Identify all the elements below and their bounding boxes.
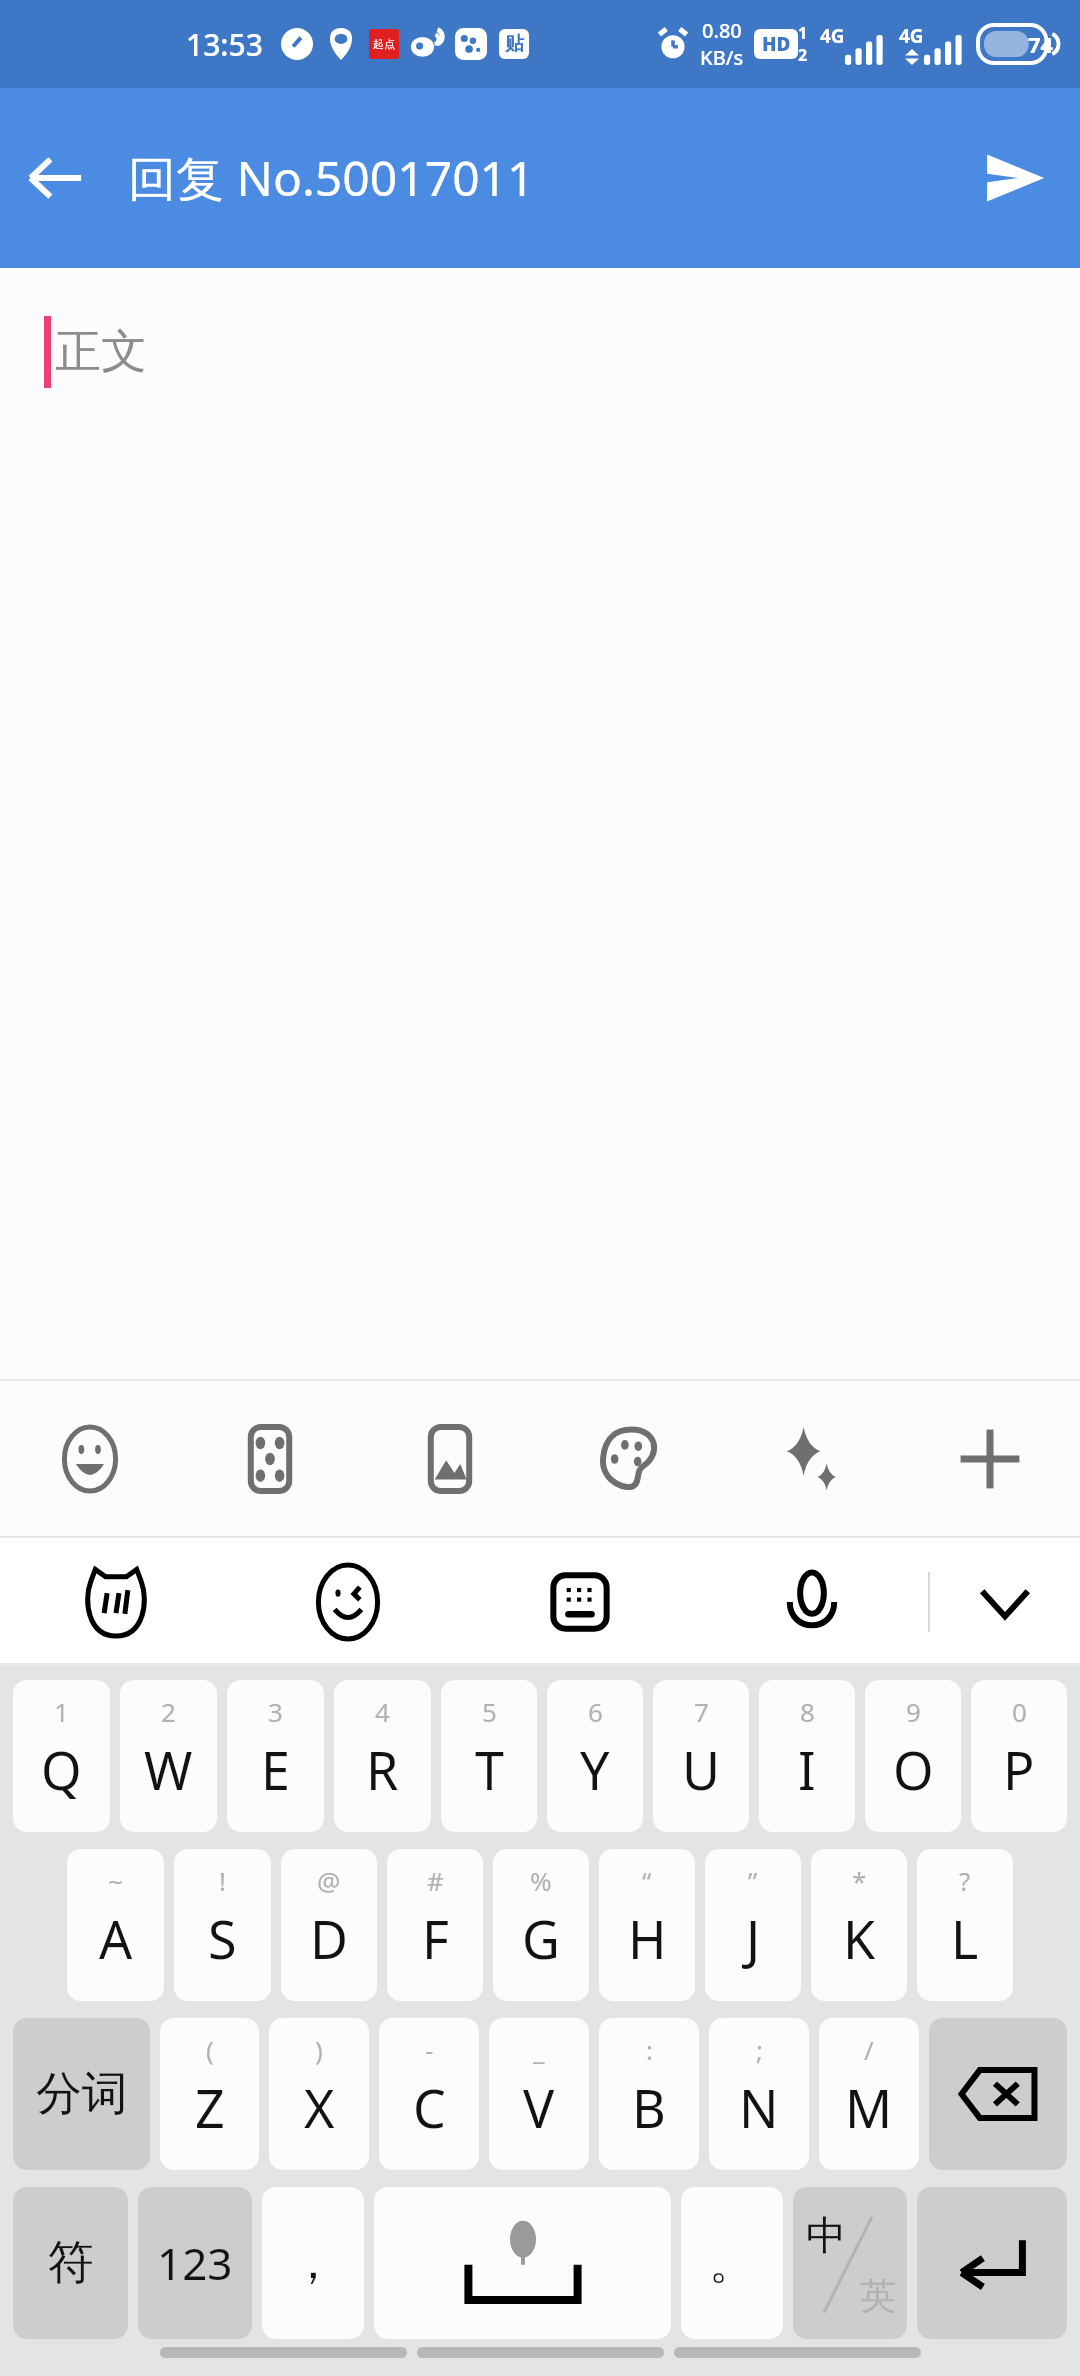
staticText: 6: [588, 1694, 603, 1729]
button[interactable]: 8: [759, 1680, 855, 1832]
button[interactable]: 123: [138, 2187, 252, 2339]
staticText: X: [304, 2072, 335, 2143]
staticText: L: [951, 1903, 979, 1974]
button[interactable]: Backspace: [929, 2018, 1067, 2170]
button[interactable]: ~: [67, 1849, 164, 2001]
staticText: 中: [806, 2210, 846, 2260]
staticText: Y: [580, 1734, 610, 1805]
button[interactable]: 7: [653, 1680, 749, 1832]
button[interactable]: Palette: [540, 1381, 720, 1536]
button[interactable]: Enter: [917, 2187, 1067, 2339]
button[interactable]: Back: [0, 123, 110, 233]
button[interactable]: /: [819, 2018, 919, 2170]
staticText: #: [427, 1863, 444, 1898]
staticText: 2: [161, 1694, 176, 1729]
button[interactable]: Dice: [180, 1381, 360, 1536]
staticText: D: [310, 1903, 348, 1974]
button[interactable]: 6: [547, 1680, 643, 1832]
staticText: ;: [756, 2032, 763, 2067]
staticText: Q: [41, 1734, 82, 1805]
button[interactable]: ，: [262, 2187, 364, 2339]
button[interactable]: 3: [227, 1680, 324, 1832]
staticText: R: [366, 1734, 399, 1805]
button[interactable]: %: [493, 1849, 589, 2001]
staticText: 正文: [55, 323, 147, 381]
button[interactable]: Baidu input: [0, 1538, 232, 1666]
staticText: 4G: [820, 23, 845, 49]
staticText: 1: [798, 22, 808, 44]
staticText: B: [632, 2072, 666, 2143]
staticText: !: [219, 1863, 226, 1898]
staticText: V: [523, 2072, 555, 2143]
staticText: 英: [860, 2273, 896, 2318]
staticText: Z: [195, 2072, 225, 2143]
staticText: N: [739, 2072, 779, 2143]
button[interactable]: Voice input: [696, 1538, 928, 1666]
staticText: 1: [54, 1694, 69, 1729]
button[interactable]: 5: [441, 1680, 537, 1832]
button[interactable]: Keyboard layout: [464, 1538, 696, 1666]
button[interactable]: Chinese English toggle: [793, 2187, 907, 2339]
button[interactable]: Hide keyboard: [930, 1538, 1080, 1666]
staticText: H: [628, 1903, 667, 1974]
staticText: C: [413, 2072, 446, 2143]
button[interactable]: *: [811, 1849, 907, 2001]
button[interactable]: ;: [709, 2018, 809, 2170]
staticText: ”: [748, 1863, 758, 1898]
button[interactable]: !: [174, 1849, 271, 2001]
button[interactable]: ”: [705, 1849, 801, 2001]
staticText: 回复 No.50017011: [128, 145, 535, 211]
staticText: 0.80: [702, 17, 742, 44]
button[interactable]: Emoji: [0, 1381, 180, 1536]
button[interactable]: 1: [13, 1680, 110, 1832]
staticText: S: [208, 1903, 237, 1974]
button[interactable]: (: [160, 2018, 259, 2170]
staticText: :: [646, 2032, 653, 2067]
staticText: U: [682, 1734, 721, 1805]
button[interactable]: “: [599, 1849, 695, 2001]
button[interactable]: -: [379, 2018, 479, 2170]
button[interactable]: Image: [360, 1381, 540, 1536]
staticText: 4G: [899, 23, 924, 49]
button[interactable]: @: [281, 1849, 377, 2001]
staticText: 4: [375, 1694, 390, 1729]
button[interactable]: More: [900, 1381, 1080, 1536]
staticText: 0: [1012, 1694, 1027, 1729]
staticText: -: [425, 2032, 434, 2067]
button[interactable]: ): [269, 2018, 369, 2170]
staticText: KB/s: [700, 44, 744, 71]
button[interactable]: Emoticons: [232, 1538, 464, 1666]
button[interactable]: 4: [334, 1680, 431, 1832]
staticText: @: [317, 1863, 341, 1898]
staticText: I: [798, 1734, 816, 1805]
button[interactable]: Sparkle: [720, 1381, 900, 1536]
button[interactable]: 9: [865, 1680, 961, 1832]
button[interactable]: ?: [917, 1849, 1013, 2001]
staticText: 7: [694, 1694, 709, 1729]
button[interactable]: Send: [950, 113, 1080, 243]
button[interactable]: 符: [13, 2187, 128, 2339]
staticText: 13:53: [186, 24, 263, 65]
button[interactable]: 0: [971, 1680, 1067, 1832]
staticText: J: [746, 1903, 761, 1974]
staticText: (: [206, 2032, 214, 2067]
staticText: W: [144, 1734, 193, 1805]
staticText: 2: [798, 44, 808, 66]
button[interactable]: Space: [374, 2187, 671, 2339]
button[interactable]: #: [387, 1849, 483, 2001]
staticText: O: [893, 1734, 934, 1805]
staticText: E: [261, 1734, 290, 1805]
staticText: T: [475, 1734, 504, 1805]
button[interactable]: 分词: [13, 2018, 150, 2170]
staticText: M: [845, 2072, 893, 2143]
staticText: 。: [709, 2234, 755, 2292]
button[interactable]: :: [599, 2018, 699, 2170]
button[interactable]: 2: [120, 1680, 217, 1832]
staticText: P: [1003, 1734, 1035, 1805]
button[interactable]: _: [489, 2018, 589, 2170]
staticText: HD: [762, 31, 791, 57]
staticText: 8: [800, 1694, 815, 1729]
staticText: F: [422, 1903, 449, 1974]
staticText: G: [522, 1903, 560, 1974]
button[interactable]: 。: [681, 2187, 783, 2339]
